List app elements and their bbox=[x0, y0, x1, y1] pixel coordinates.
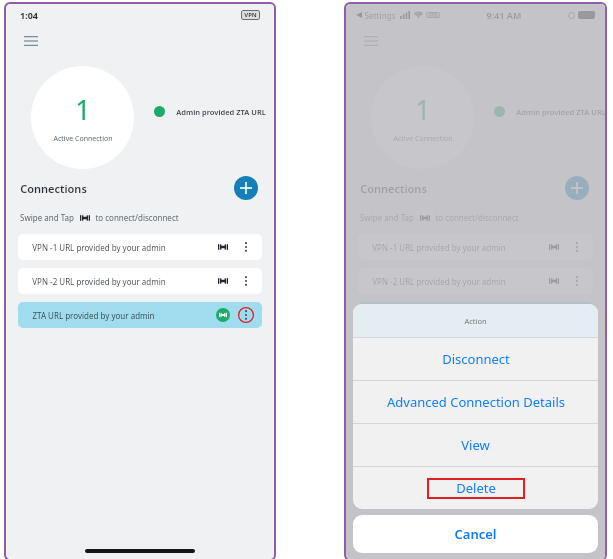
button[interactable]: VPN -2 URL provided by your admin bbox=[18, 268, 262, 294]
button[interactable]: Connect bbox=[547, 240, 561, 254]
button[interactable]: More options bbox=[569, 273, 585, 289]
button[interactable]: ZTA URL provided by your admin bbox=[358, 302, 593, 328]
button[interactable]: More options bbox=[238, 239, 254, 255]
button[interactable]: Cancel bbox=[353, 515, 598, 553]
staticText: Connections bbox=[20, 181, 87, 196]
staticText: Swipe and Tap bbox=[20, 212, 74, 223]
staticText: to connect/disconnect bbox=[95, 212, 179, 223]
staticText: Advanced Connection Details bbox=[387, 393, 565, 411]
button[interactable]: Add connection bbox=[565, 176, 589, 200]
staticText: VPN -1 URL provided by your admin bbox=[32, 242, 166, 253]
staticText: ZTA URL provided by your admin bbox=[32, 310, 155, 321]
staticText: View bbox=[461, 436, 490, 454]
staticText: Cancel bbox=[454, 525, 497, 543]
button[interactable]: VPN -1 URL provided by your admin bbox=[358, 234, 593, 260]
button[interactable]: ZTA URL provided by your admin bbox=[18, 302, 262, 328]
staticText: VPN -2 URL provided by your admin bbox=[372, 276, 506, 287]
button[interactable]: Connect bbox=[216, 240, 230, 254]
button[interactable]: VPN -2 URL provided by your admin bbox=[358, 268, 593, 294]
button[interactable]: Menu bbox=[360, 32, 382, 54]
button[interactable]: View bbox=[353, 424, 598, 466]
staticText: 1:04 bbox=[20, 9, 38, 21]
staticText: VPN bbox=[244, 11, 257, 19]
staticText: Admin provided ZTA URL bbox=[516, 107, 605, 117]
staticText: Connections bbox=[360, 181, 427, 196]
button[interactable]: VPN -1 URL provided by your admin bbox=[18, 234, 262, 260]
staticText: Settings bbox=[364, 10, 396, 21]
staticText: Active Connection bbox=[53, 134, 113, 144]
staticText: VPN -2 URL provided by your admin bbox=[32, 276, 166, 287]
staticText: 1 bbox=[75, 91, 91, 128]
button[interactable]: Connect bbox=[216, 274, 230, 288]
button[interactable]: Advanced Connection Details bbox=[353, 381, 598, 423]
staticText: Disconnect bbox=[442, 350, 510, 368]
button[interactable]: Connect bbox=[547, 274, 561, 288]
button[interactable]: Disconnect bbox=[216, 308, 230, 322]
staticText: VPN -1 URL provided by your admin bbox=[372, 242, 506, 253]
button[interactable]: More options bbox=[569, 239, 585, 255]
staticText: Action bbox=[464, 316, 487, 326]
staticText: Swipe and Tap bbox=[360, 212, 414, 223]
button[interactable]: Delete bbox=[353, 467, 598, 509]
staticText: 1 bbox=[415, 91, 431, 128]
button[interactable]: More options bbox=[238, 307, 254, 323]
staticText: to connect/disconnect bbox=[435, 212, 519, 223]
button[interactable]: Menu bbox=[20, 32, 42, 54]
button[interactable]: More options bbox=[238, 273, 254, 289]
staticText: Delete bbox=[456, 479, 496, 497]
staticText: VPN bbox=[428, 12, 438, 18]
button[interactable]: Disconnect bbox=[353, 338, 598, 380]
staticText: Active Connection bbox=[393, 134, 453, 144]
button[interactable]: Add connection bbox=[234, 176, 258, 200]
staticText: ZTA URL provided by your admin bbox=[372, 310, 495, 321]
staticText: Admin provided ZTA URL bbox=[176, 107, 266, 117]
staticText: 9:41 AM bbox=[486, 9, 522, 21]
